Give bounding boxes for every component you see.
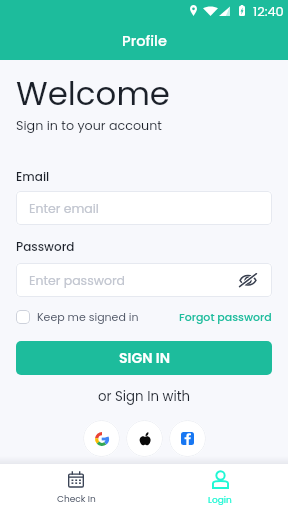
staticText: SIGN IN	[119, 348, 170, 368]
button[interactable]: Login	[154, 464, 286, 512]
staticText: Enter email	[29, 200, 99, 217]
staticText: Forgot password	[179, 309, 272, 324]
button[interactable]: Check In	[10, 464, 142, 512]
staticText: Password	[16, 238, 75, 255]
button[interactable]: Keep me signed in	[16, 309, 139, 324]
staticText: Email	[16, 168, 50, 185]
button[interactable]: SIGN IN	[16, 341, 272, 375]
staticText: Welcome	[16, 71, 171, 117]
button[interactable]: Sign in with Facebook	[169, 420, 206, 457]
button[interactable]: Sign in with Apple	[126, 420, 163, 457]
staticText: Keep me signed in	[37, 309, 139, 324]
staticText: Profile	[122, 31, 167, 51]
button[interactable]: Enter email	[16, 191, 272, 225]
staticText: Sign in to your account	[16, 117, 162, 135]
staticText: Enter password	[29, 272, 126, 289]
staticText: or Sign In with	[98, 387, 191, 406]
staticText: Login	[208, 494, 232, 507]
staticText: Check In	[57, 493, 96, 506]
button[interactable]: Forgot password	[179, 309, 272, 324]
staticText: 12:40	[253, 2, 284, 20]
button[interactable]: Enter password	[16, 263, 272, 297]
button[interactable]: Sign in with Google	[83, 420, 120, 457]
button[interactable]: Show password	[238, 270, 258, 290]
